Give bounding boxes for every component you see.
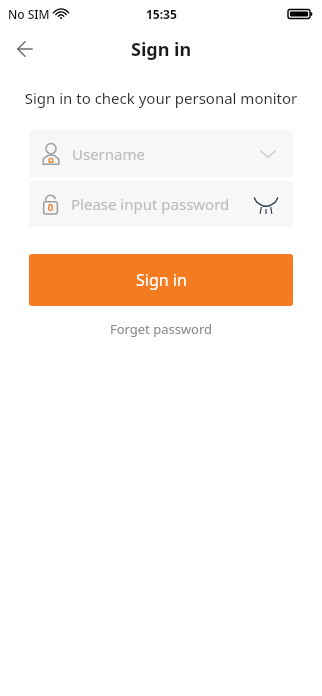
button[interactable]: Please input password: [29, 181, 293, 227]
button[interactable]: Back: [8, 32, 42, 66]
staticText: Sign in: [131, 37, 192, 62]
button[interactable]: Show account list: [255, 141, 281, 167]
staticText: Please input password: [71, 194, 230, 214]
button[interactable]: Forget password: [0, 318, 322, 340]
button[interactable]: Show password: [251, 189, 281, 219]
button[interactable]: Username: [29, 130, 293, 177]
staticText: 15:35: [146, 6, 177, 22]
staticText: Username: [72, 144, 145, 164]
button[interactable]: Sign in: [29, 254, 293, 306]
staticText: No SIM: [8, 6, 50, 22]
staticText: Sign in to check your personal monitor: [16, 88, 306, 108]
staticText: Sign in: [136, 269, 187, 291]
